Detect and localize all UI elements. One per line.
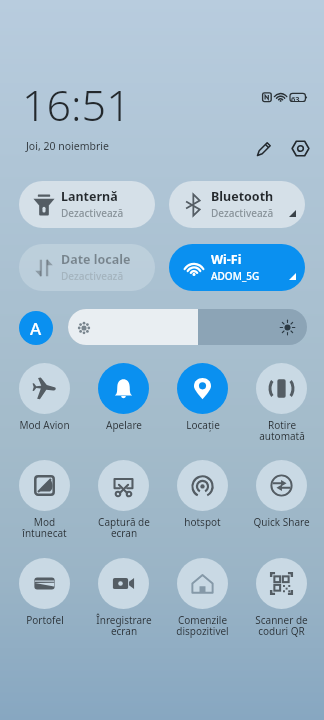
staticText: Quick Share (253, 515, 310, 529)
staticText: Înregistrare ecran (96, 613, 152, 638)
button[interactable]: Portofel (5, 558, 84, 627)
staticText: Joi, 20 noiembrie (26, 139, 109, 153)
button[interactable]: Date locale (19, 244, 155, 291)
button[interactable]: Bluetooth (169, 181, 305, 228)
staticText: Mod Avion (19, 418, 70, 432)
staticText: Rotire automată (259, 418, 305, 443)
button[interactable]: A (19, 311, 53, 345)
staticText: Bluetooth (211, 188, 274, 205)
button[interactable]: Comenzile dispozitivel (163, 558, 242, 638)
staticText: hotspot (184, 515, 221, 529)
staticText: Comenzile dispozitivel (176, 613, 229, 638)
staticText: ADOM_5G (211, 269, 260, 283)
staticText: Dezactivează (211, 206, 274, 220)
button[interactable]: Edit quick settings (248, 132, 280, 164)
button[interactable]: Settings (284, 132, 316, 164)
staticText: Captură de ecran (98, 515, 150, 540)
button[interactable]: Înregistrare ecran (84, 558, 163, 638)
button[interactable]: Quick Share (242, 460, 321, 529)
button[interactable]: Lanternă (19, 181, 155, 228)
staticText: Dezactivează (61, 269, 124, 283)
button[interactable]: Captură de ecran (84, 460, 163, 540)
button[interactable]: Mod întunecat (5, 460, 84, 540)
button[interactable]: Locație (163, 363, 242, 432)
button[interactable]: Wi-Fi (169, 244, 305, 291)
staticText: Apelare (106, 418, 142, 432)
staticText: 16:51 (22, 75, 131, 134)
staticText: Dezactivează (61, 206, 124, 220)
staticText: A (30, 317, 42, 340)
button[interactable]: Mod Avion (5, 363, 84, 432)
button[interactable] (68, 309, 307, 345)
staticText: Scanner de coduri QR (255, 613, 308, 638)
button[interactable]: Rotire automată (242, 363, 321, 443)
staticText: Locație (186, 418, 220, 432)
button[interactable]: Apelare (84, 363, 163, 432)
staticText: Portofel (26, 613, 64, 627)
button[interactable]: Scanner de coduri QR (242, 558, 321, 638)
staticText: 63 (291, 94, 300, 104)
staticText: Date locale (61, 251, 131, 268)
staticText: Lanternă (61, 188, 118, 205)
staticText: Wi-Fi (211, 251, 242, 268)
staticText: Mod întunecat (22, 515, 67, 540)
button[interactable]: hotspot (163, 460, 242, 529)
